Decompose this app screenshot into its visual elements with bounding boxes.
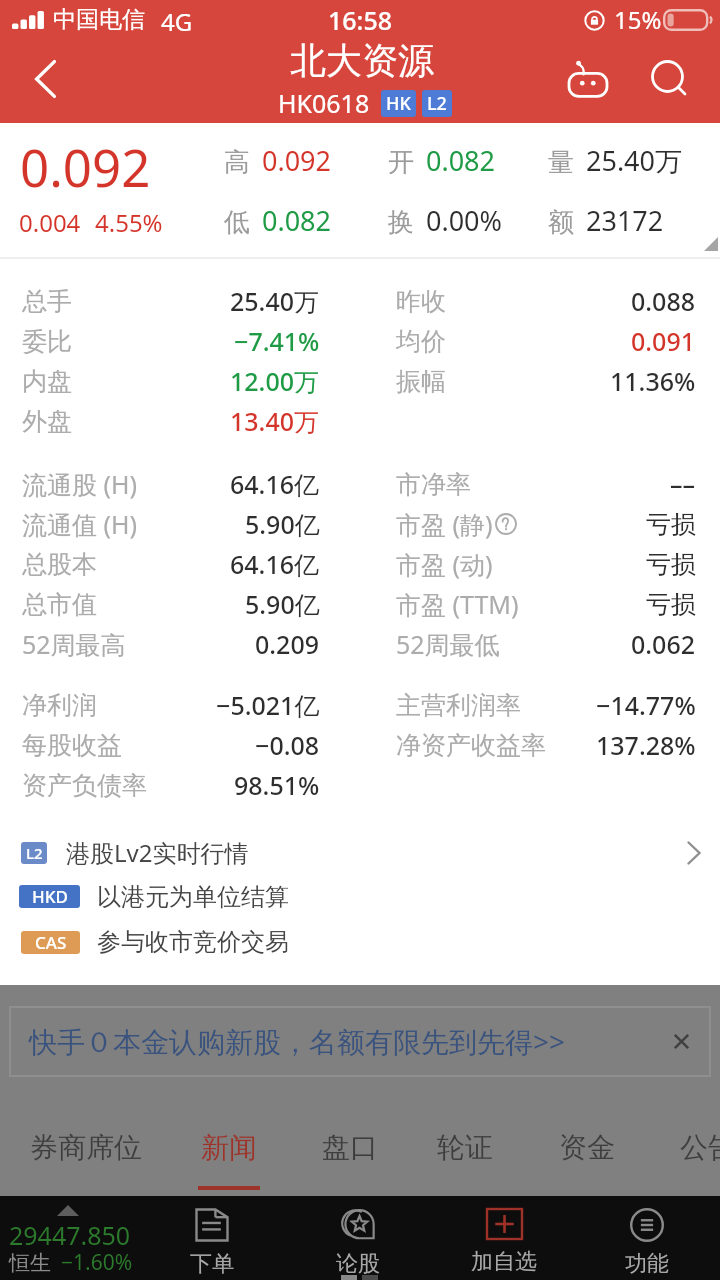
staticText: 15% [614, 3, 662, 36]
staticText: 内盘 [22, 366, 72, 397]
staticText: 亏损 [646, 589, 696, 620]
staticText: 快手０本金认购新股，名额有限先到先得>> [29, 1022, 566, 1060]
staticText: –– [670, 467, 696, 501]
staticText: 流通股 (H) [22, 467, 138, 501]
button[interactable]: 盘口 [292, 1110, 408, 1196]
button[interactable]: Functions [589, 1196, 705, 1280]
staticText: 流通值 (H) [22, 507, 138, 541]
staticText: 外盘 [22, 406, 72, 437]
staticText: −7.41% [234, 324, 320, 358]
button[interactable]: 29447.850 [0, 1196, 170, 1280]
staticText: L2 [26, 843, 43, 863]
staticText: 0.092 [20, 132, 151, 201]
button[interactable]: 券商席位 [28, 1110, 144, 1196]
button[interactable]: 快手０本金认购新股，名额有限先到先得>> [10, 1007, 710, 1076]
staticText: 换 [388, 206, 414, 239]
button[interactable]: L2 [0, 831, 720, 874]
staticText: 净利润 [22, 690, 97, 721]
button[interactable]: Search [634, 40, 720, 123]
staticText: 23172 [586, 202, 664, 239]
staticText: 亏损 [646, 509, 696, 540]
staticText: 5.90亿 [245, 587, 320, 621]
staticText: HKD [32, 885, 68, 908]
staticText: 每股收益 [22, 730, 122, 761]
staticText: 137.28% [596, 728, 696, 762]
staticText: 北大资源 [290, 38, 434, 83]
staticText: 额 [548, 206, 574, 239]
staticText: 0.092 [262, 142, 332, 179]
button[interactable]: Place order [154, 1196, 270, 1280]
staticText: 5.90亿 [245, 507, 320, 541]
staticText: 券商席位 [30, 1130, 142, 1165]
button[interactable]: Discuss stocks [300, 1196, 416, 1280]
button[interactable]: Robot assistant [550, 40, 630, 123]
button[interactable]: 轮证 [407, 1110, 523, 1196]
staticText: 功能 [625, 1250, 669, 1278]
staticText: 98.51% [234, 768, 320, 802]
button[interactable]: Back [0, 40, 92, 123]
staticText: 中国电信 [53, 5, 145, 34]
staticText: 高 [224, 146, 250, 179]
staticText: 0.00% [426, 202, 503, 239]
staticText: 盘口 [322, 1130, 378, 1165]
staticText: 资产负债率 [22, 770, 147, 801]
staticText: 0.062 [631, 627, 696, 661]
staticText: 下单 [190, 1250, 234, 1278]
staticText: 16:58 [328, 3, 393, 37]
staticText: −1.60% [61, 1248, 133, 1277]
staticText: −5.021亿 [216, 688, 320, 722]
staticText: −14.77% [596, 688, 696, 722]
staticText: 市净率 [396, 469, 471, 500]
staticText: 主营利润率 [396, 690, 521, 721]
staticText: 低 [224, 206, 250, 239]
staticText: 25.40万 [586, 142, 683, 179]
staticText: 25.40万 [230, 284, 320, 318]
button[interactable]: Add to watchlist [446, 1196, 562, 1280]
staticText: 振幅 [396, 366, 446, 397]
staticText: 净资产收益率 [396, 730, 546, 761]
staticText: 轮证 [437, 1130, 493, 1165]
staticText: CAS [35, 931, 67, 954]
staticText: 64.16亿 [230, 467, 320, 501]
staticText: L2 [427, 91, 447, 116]
button[interactable]: Close banner [653, 1007, 709, 1076]
staticText: 昨收 [396, 286, 446, 317]
staticText: 12.00万 [230, 364, 320, 398]
staticText: 0.209 [255, 627, 320, 661]
staticText: 64.16亿 [230, 547, 320, 581]
staticText: HK [386, 91, 411, 116]
staticText: 0.082 [426, 142, 496, 179]
staticText: 市盈 (TTM) [396, 587, 519, 621]
staticText: 13.40万 [230, 404, 320, 438]
staticText: 4G [161, 5, 193, 38]
staticText: 以港元为单位结算 [97, 882, 289, 912]
staticText: 0.088 [631, 284, 696, 318]
staticText: 港股Lv2实时行情 [66, 836, 249, 869]
staticText: 总股本 [22, 549, 97, 580]
staticText: 0.004 [19, 206, 81, 239]
staticText: 4.55% [95, 206, 163, 239]
staticText: 论股 [336, 1250, 380, 1278]
staticText: 0.091 [631, 324, 696, 358]
staticText: 量 [548, 146, 574, 179]
button[interactable]: 新闻 [171, 1110, 287, 1196]
button[interactable]: 资金 [529, 1110, 645, 1196]
staticText: 29447.850 [9, 1218, 131, 1252]
staticText: 加自选 [471, 1248, 537, 1276]
staticText: 总手 [22, 286, 72, 317]
staticText: 委比 [22, 326, 72, 357]
staticText: 11.36% [610, 364, 696, 398]
staticText: 52周最高 [22, 627, 126, 661]
staticText: 52周最低 [396, 627, 500, 661]
staticText: 总市值 [22, 589, 97, 620]
staticText: 市盈 (动) [396, 547, 493, 581]
staticText: −0.08 [255, 728, 320, 762]
staticText: 恒生 [9, 1250, 51, 1276]
staticText: 公告 [680, 1130, 720, 1165]
staticText: 亏损 [646, 549, 696, 580]
staticText: HK0618 [278, 86, 370, 120]
staticText: 市盈 (静) [396, 507, 493, 541]
button[interactable]: 公告 [650, 1110, 720, 1196]
staticText: 开 [388, 146, 414, 179]
staticText: 资金 [559, 1130, 615, 1165]
